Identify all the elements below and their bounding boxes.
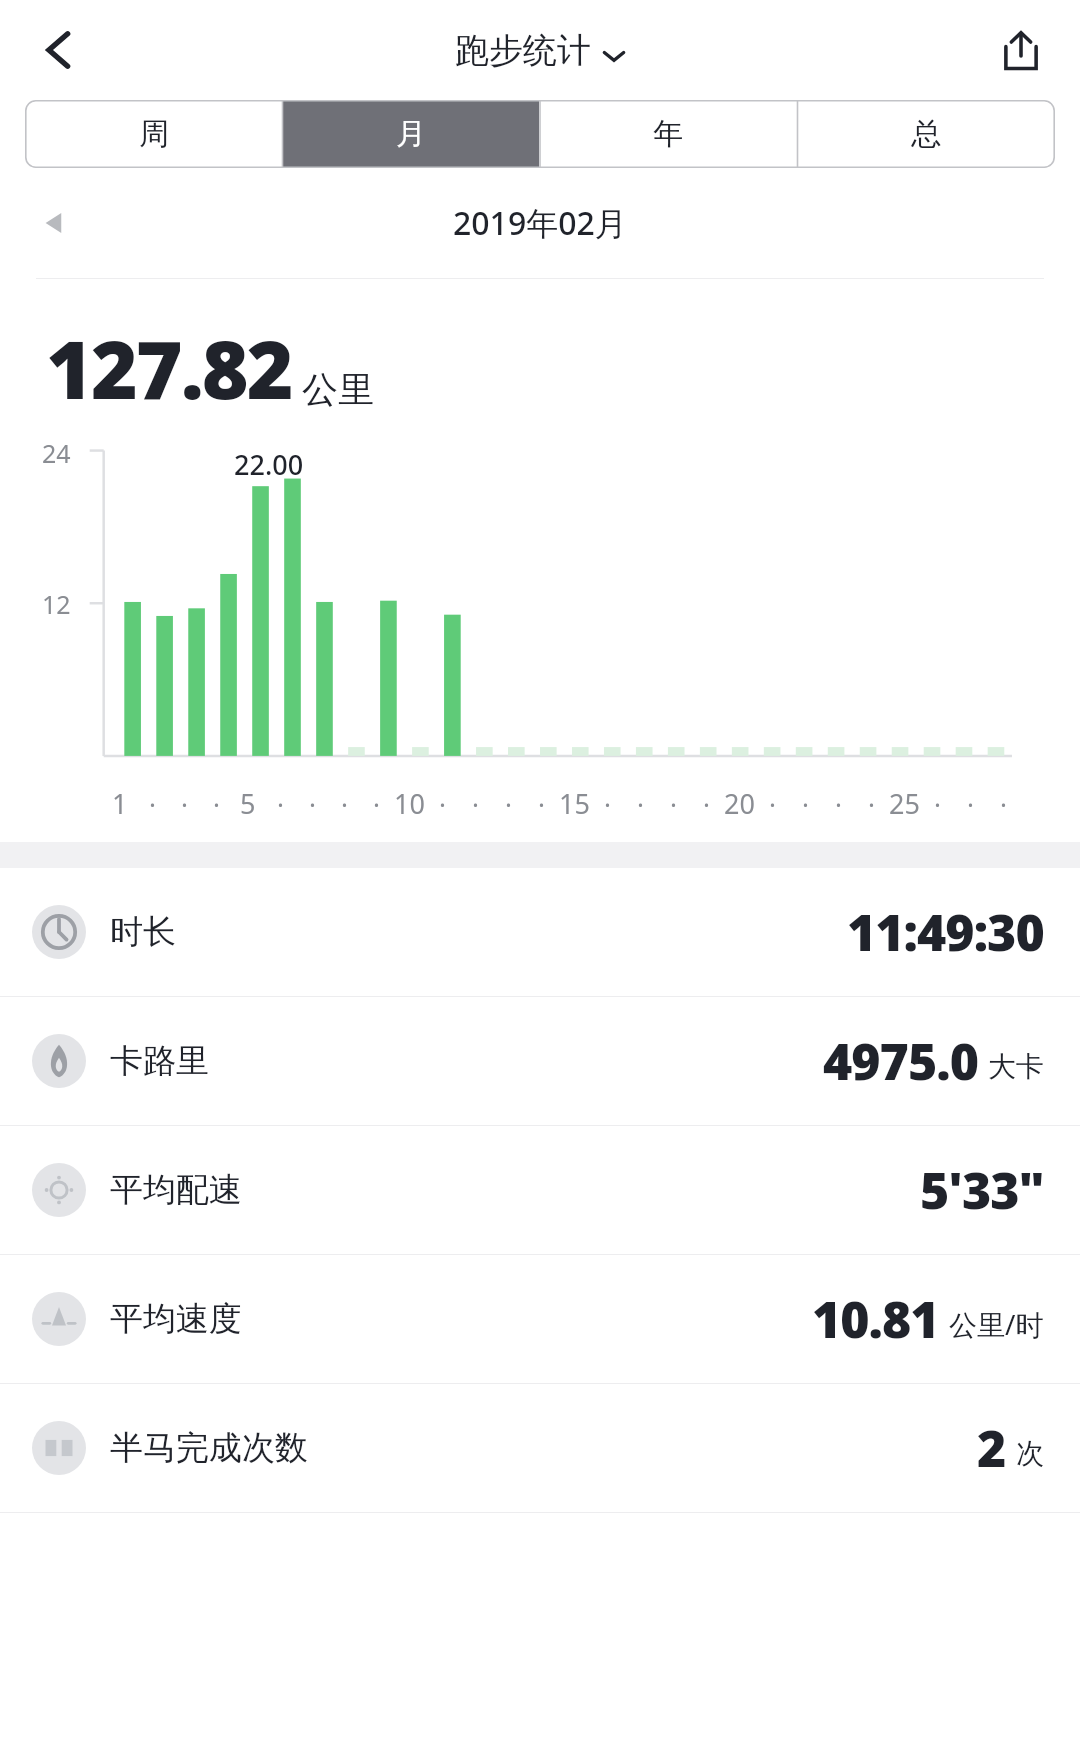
staticText: 半马完成次数 bbox=[110, 1427, 308, 1469]
button[interactable]: 平均配速 bbox=[0, 1126, 1080, 1254]
staticText: 127.82 bbox=[46, 313, 292, 422]
staticText: · bbox=[538, 786, 545, 821]
staticText: 5'33" bbox=[920, 1156, 1044, 1224]
staticText: · bbox=[967, 786, 974, 821]
staticText: · bbox=[769, 786, 776, 821]
staticText: 跑步统计 bbox=[455, 29, 591, 72]
button[interactable]: 总 bbox=[797, 100, 1055, 168]
staticText: · bbox=[373, 786, 380, 821]
staticText: 周 bbox=[139, 115, 169, 153]
staticText: · bbox=[703, 786, 710, 821]
button[interactable]: 月 bbox=[282, 100, 539, 168]
staticText: 10 bbox=[394, 785, 425, 822]
button[interactable]: 年 bbox=[539, 100, 797, 168]
staticText: 大卡 bbox=[988, 1049, 1044, 1084]
button[interactable]: Share bbox=[984, 13, 1058, 87]
staticText: 20 bbox=[724, 785, 755, 822]
button[interactable]: 时长 bbox=[0, 868, 1080, 996]
staticText: 5 bbox=[240, 785, 256, 822]
staticText: 时长 bbox=[110, 911, 176, 953]
staticText: 25 bbox=[889, 785, 920, 822]
button[interactable]: 卡路里 bbox=[0, 997, 1080, 1125]
staticText: 卡路里 bbox=[110, 1040, 209, 1082]
staticText: · bbox=[472, 786, 479, 821]
button[interactable]: Previous month bbox=[24, 193, 84, 253]
staticText: 12 bbox=[42, 587, 71, 621]
staticText: · bbox=[277, 786, 284, 821]
staticText: 月 bbox=[396, 115, 426, 153]
staticText: 10.81 bbox=[812, 1285, 939, 1353]
staticText: · bbox=[1000, 786, 1007, 821]
staticText: · bbox=[868, 786, 875, 821]
staticText: 2019年02月 bbox=[453, 201, 627, 245]
staticText: · bbox=[934, 786, 941, 821]
staticText: 平均配速 bbox=[110, 1169, 242, 1211]
staticText: · bbox=[439, 786, 446, 821]
staticText: 22.00 bbox=[234, 446, 304, 483]
staticText: 平均速度 bbox=[110, 1298, 242, 1340]
staticText: · bbox=[835, 786, 842, 821]
staticText: 24 bbox=[42, 436, 71, 470]
staticText: 11:49:30 bbox=[847, 898, 1044, 966]
staticText: · bbox=[213, 786, 220, 821]
staticText: 年 bbox=[653, 115, 683, 153]
staticText: 15 bbox=[559, 785, 590, 822]
staticText: · bbox=[802, 786, 809, 821]
staticText: 公里 bbox=[302, 367, 374, 412]
staticText: · bbox=[670, 786, 677, 821]
staticText: · bbox=[637, 786, 644, 821]
button[interactable]: Back bbox=[22, 13, 96, 87]
staticText: 1 bbox=[112, 785, 128, 822]
button[interactable]: 平均速度 bbox=[0, 1255, 1080, 1383]
staticText: · bbox=[149, 786, 156, 821]
button[interactable]: 半马完成次数 bbox=[0, 1384, 1080, 1512]
staticText: 2 bbox=[977, 1414, 1006, 1482]
staticText: 公里/时 bbox=[949, 1305, 1044, 1343]
staticText: · bbox=[181, 786, 188, 821]
staticText: · bbox=[505, 786, 512, 821]
button[interactable]: 周 bbox=[25, 100, 282, 168]
staticText: 4975.0 bbox=[823, 1027, 978, 1095]
staticText: 总 bbox=[911, 115, 941, 153]
staticText: 次 bbox=[1016, 1436, 1044, 1471]
staticText: · bbox=[309, 786, 316, 821]
staticText: · bbox=[341, 786, 348, 821]
staticText: · bbox=[604, 786, 611, 821]
button[interactable]: 跑步统计 bbox=[455, 29, 625, 72]
